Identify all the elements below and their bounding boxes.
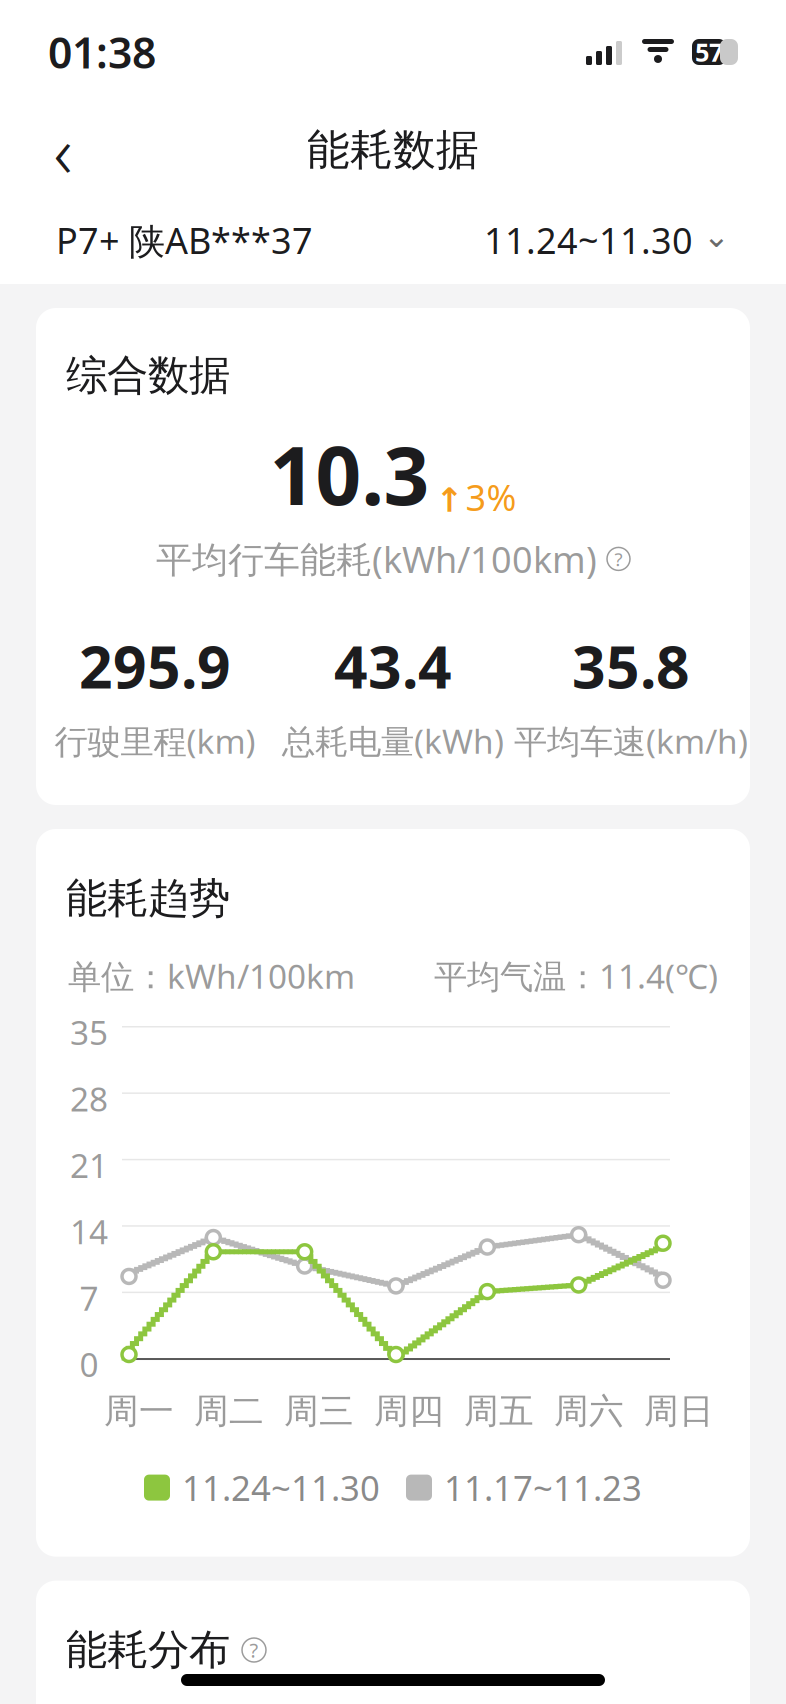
staticText: 平均车速(km/h)	[514, 719, 748, 763]
staticText: 35	[70, 1010, 108, 1054]
staticText: 总耗电量(kWh)	[282, 719, 504, 763]
staticText: 行驶里程(km)	[54, 719, 255, 763]
staticText: 周二	[194, 1390, 264, 1433]
staticText: 10.3	[269, 421, 429, 527]
staticText: 周五	[464, 1390, 534, 1433]
staticText: ⌄	[703, 218, 730, 254]
staticText: 周六	[554, 1390, 624, 1433]
staticText: 能耗数据	[307, 124, 479, 176]
staticText: 14	[70, 1209, 108, 1253]
staticText: ‹	[53, 102, 72, 198]
staticText: 3%	[465, 473, 516, 521]
staticText: 01:38	[48, 24, 156, 80]
staticText: 平均气温：11.4(℃)	[434, 954, 718, 998]
staticText: 能耗分布	[66, 1625, 230, 1675]
button[interactable]: 能耗分布	[66, 1625, 266, 1675]
staticText: ?	[614, 546, 622, 571]
staticText: 57	[695, 35, 723, 69]
staticText: P7+ 陕AB***37	[56, 216, 313, 264]
staticText: 7	[79, 1276, 98, 1320]
staticText: 单位：kWh/100km	[68, 954, 355, 998]
staticText: 11.24~11.30	[182, 1465, 380, 1511]
staticText: 周四	[374, 1390, 444, 1433]
staticText: 295.9	[79, 627, 231, 705]
button[interactable]: 11.24~11.30	[484, 216, 730, 264]
button[interactable]: 返回	[30, 117, 96, 183]
staticText: 周日	[644, 1390, 714, 1433]
staticText: 43.4	[334, 627, 452, 705]
staticText: 综合数据	[66, 350, 230, 401]
staticText: 35.8	[572, 627, 690, 705]
staticText: 0	[79, 1342, 98, 1386]
staticText: 平均行车能耗(kWh/100km)	[156, 535, 597, 583]
staticText: 周三	[284, 1390, 354, 1433]
staticText: 21	[70, 1143, 108, 1187]
staticText: ?	[249, 1637, 258, 1663]
staticText: 11.24~11.30	[484, 216, 693, 264]
staticText: 能耗趋势	[66, 873, 230, 924]
staticText: 周一	[104, 1390, 174, 1433]
button[interactable]: 平均行车能耗(kWh/100km)	[156, 535, 630, 583]
staticText: 11.17~11.23	[444, 1465, 642, 1511]
staticText: ↑	[435, 481, 463, 519]
staticText: 28	[70, 1076, 108, 1121]
